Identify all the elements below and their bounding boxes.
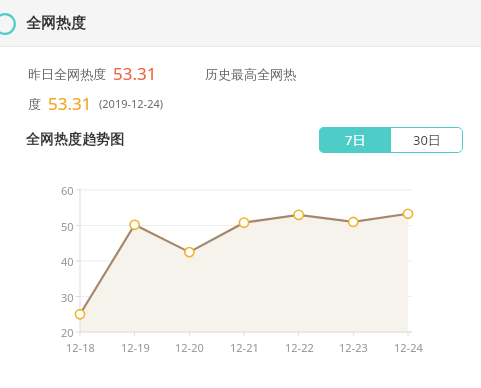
staticText: 全网热度趋势图 (26, 131, 124, 149)
staticText: 12-24 (394, 340, 423, 355)
staticText: 60 (61, 183, 74, 198)
staticText: 53.31 (48, 92, 92, 115)
staticText: 7日 (345, 131, 366, 149)
staticText: 12-22 (285, 340, 314, 355)
other: Section marker (0, 12, 17, 36)
staticText: 40 (61, 254, 74, 269)
staticText: 12-20 (175, 340, 204, 355)
staticText: 50 (61, 219, 74, 234)
staticText: 30日 (413, 131, 441, 149)
button[interactable]: 30日 (391, 127, 463, 153)
staticText: (2019-12-24) (99, 96, 164, 111)
staticText: 20 (61, 325, 74, 340)
staticText: 度 (28, 96, 41, 112)
staticText: 历史最高全网热 (205, 66, 296, 82)
staticText: 12-21 (230, 340, 259, 355)
staticText: 12-19 (121, 340, 150, 355)
staticText: 30 (61, 290, 74, 305)
staticText: 12-18 (66, 340, 95, 355)
staticText: 53.31 (113, 62, 157, 85)
staticText: 昨日全网热度 (28, 66, 106, 82)
staticText: 全网热度 (26, 14, 86, 33)
button[interactable]: 7日 (319, 127, 391, 153)
staticText: 12-23 (339, 340, 368, 355)
